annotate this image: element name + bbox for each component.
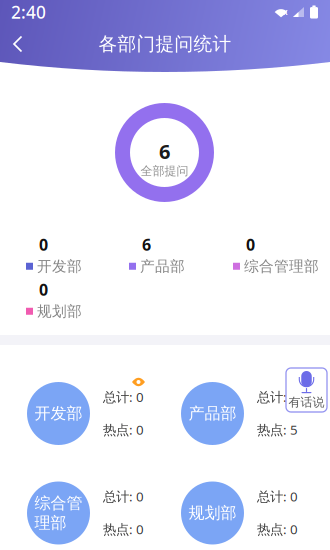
staticText: 热点: 0 bbox=[103, 520, 144, 538]
staticText: 产品部 bbox=[140, 257, 185, 275]
staticText: 综合管理部 bbox=[244, 257, 319, 275]
staticText: 热点: 0 bbox=[103, 421, 144, 438]
staticText: 开发部 bbox=[34, 404, 82, 423]
staticText: 规划部 bbox=[37, 302, 82, 320]
staticText: 热点: 0 bbox=[257, 520, 298, 538]
staticText: 6 bbox=[142, 234, 151, 255]
staticText: 6 bbox=[159, 138, 170, 165]
staticText: 热点: 5 bbox=[257, 421, 298, 438]
button[interactable]: 规划部 bbox=[169, 462, 315, 550]
button[interactable]: 返回 bbox=[0, 28, 36, 59]
button[interactable]: 开发部 bbox=[15, 363, 161, 467]
staticText: 规划部 bbox=[188, 503, 236, 523]
staticText: x bbox=[283, 7, 288, 17]
staticText: 产品部 bbox=[188, 404, 236, 423]
staticText: 总计: 0 bbox=[103, 388, 144, 406]
staticText: 2:40 bbox=[11, 0, 46, 23]
staticText: 0 bbox=[39, 279, 48, 300]
staticText: 总计: 0 bbox=[257, 388, 298, 406]
button[interactable]: 有话说 bbox=[286, 368, 327, 412]
button[interactable]: 产品部 bbox=[169, 363, 315, 467]
button[interactable]: 综合管理部 bbox=[15, 462, 161, 550]
staticText: 总计: 0 bbox=[257, 487, 298, 505]
staticText: 各部门提问统计 bbox=[98, 32, 231, 55]
staticText: 0 bbox=[39, 234, 48, 255]
staticText: 0 bbox=[246, 234, 255, 255]
staticText: 有话说 bbox=[288, 395, 324, 410]
staticText: 全部提问 bbox=[140, 164, 188, 178]
staticText: 综合管理部 bbox=[34, 493, 82, 533]
staticText: 总计: 0 bbox=[103, 487, 144, 505]
staticText: 开发部 bbox=[37, 257, 82, 275]
